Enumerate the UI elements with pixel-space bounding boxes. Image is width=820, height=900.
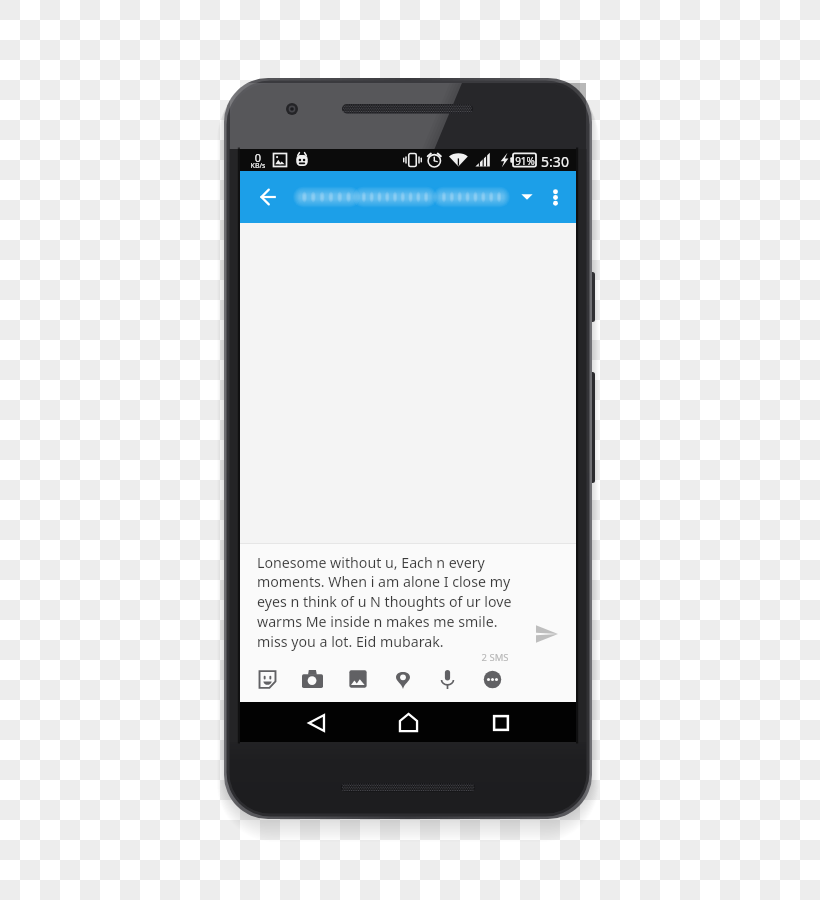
button[interactable]: Share location bbox=[380, 665, 425, 693]
button[interactable]: Show contact list bbox=[505, 175, 549, 219]
staticText: 5:30 bbox=[538, 152, 572, 171]
staticText: Lonesome without u, Each n every moments… bbox=[257, 553, 513, 652]
button[interactable]: More attachments bbox=[470, 665, 515, 693]
button[interactable]: Navigate up bbox=[244, 173, 292, 221]
button[interactable]: Insert sticker bbox=[245, 665, 290, 693]
button[interactable]: Recent apps bbox=[479, 703, 523, 743]
button[interactable]: More options bbox=[533, 175, 577, 219]
button[interactable]: Take photo bbox=[290, 665, 335, 693]
staticText: KB/s bbox=[248, 161, 268, 171]
button[interactable]: Send bbox=[527, 614, 567, 654]
staticText: 2 SMS bbox=[479, 651, 511, 664]
button[interactable]: Insert picture bbox=[335, 665, 380, 693]
button[interactable]: Record audio bbox=[425, 665, 470, 693]
button[interactable]: Back bbox=[294, 703, 338, 743]
staticText: 0 bbox=[251, 150, 265, 165]
button[interactable]: Home bbox=[386, 702, 430, 742]
staticText: 91% bbox=[514, 154, 536, 168]
